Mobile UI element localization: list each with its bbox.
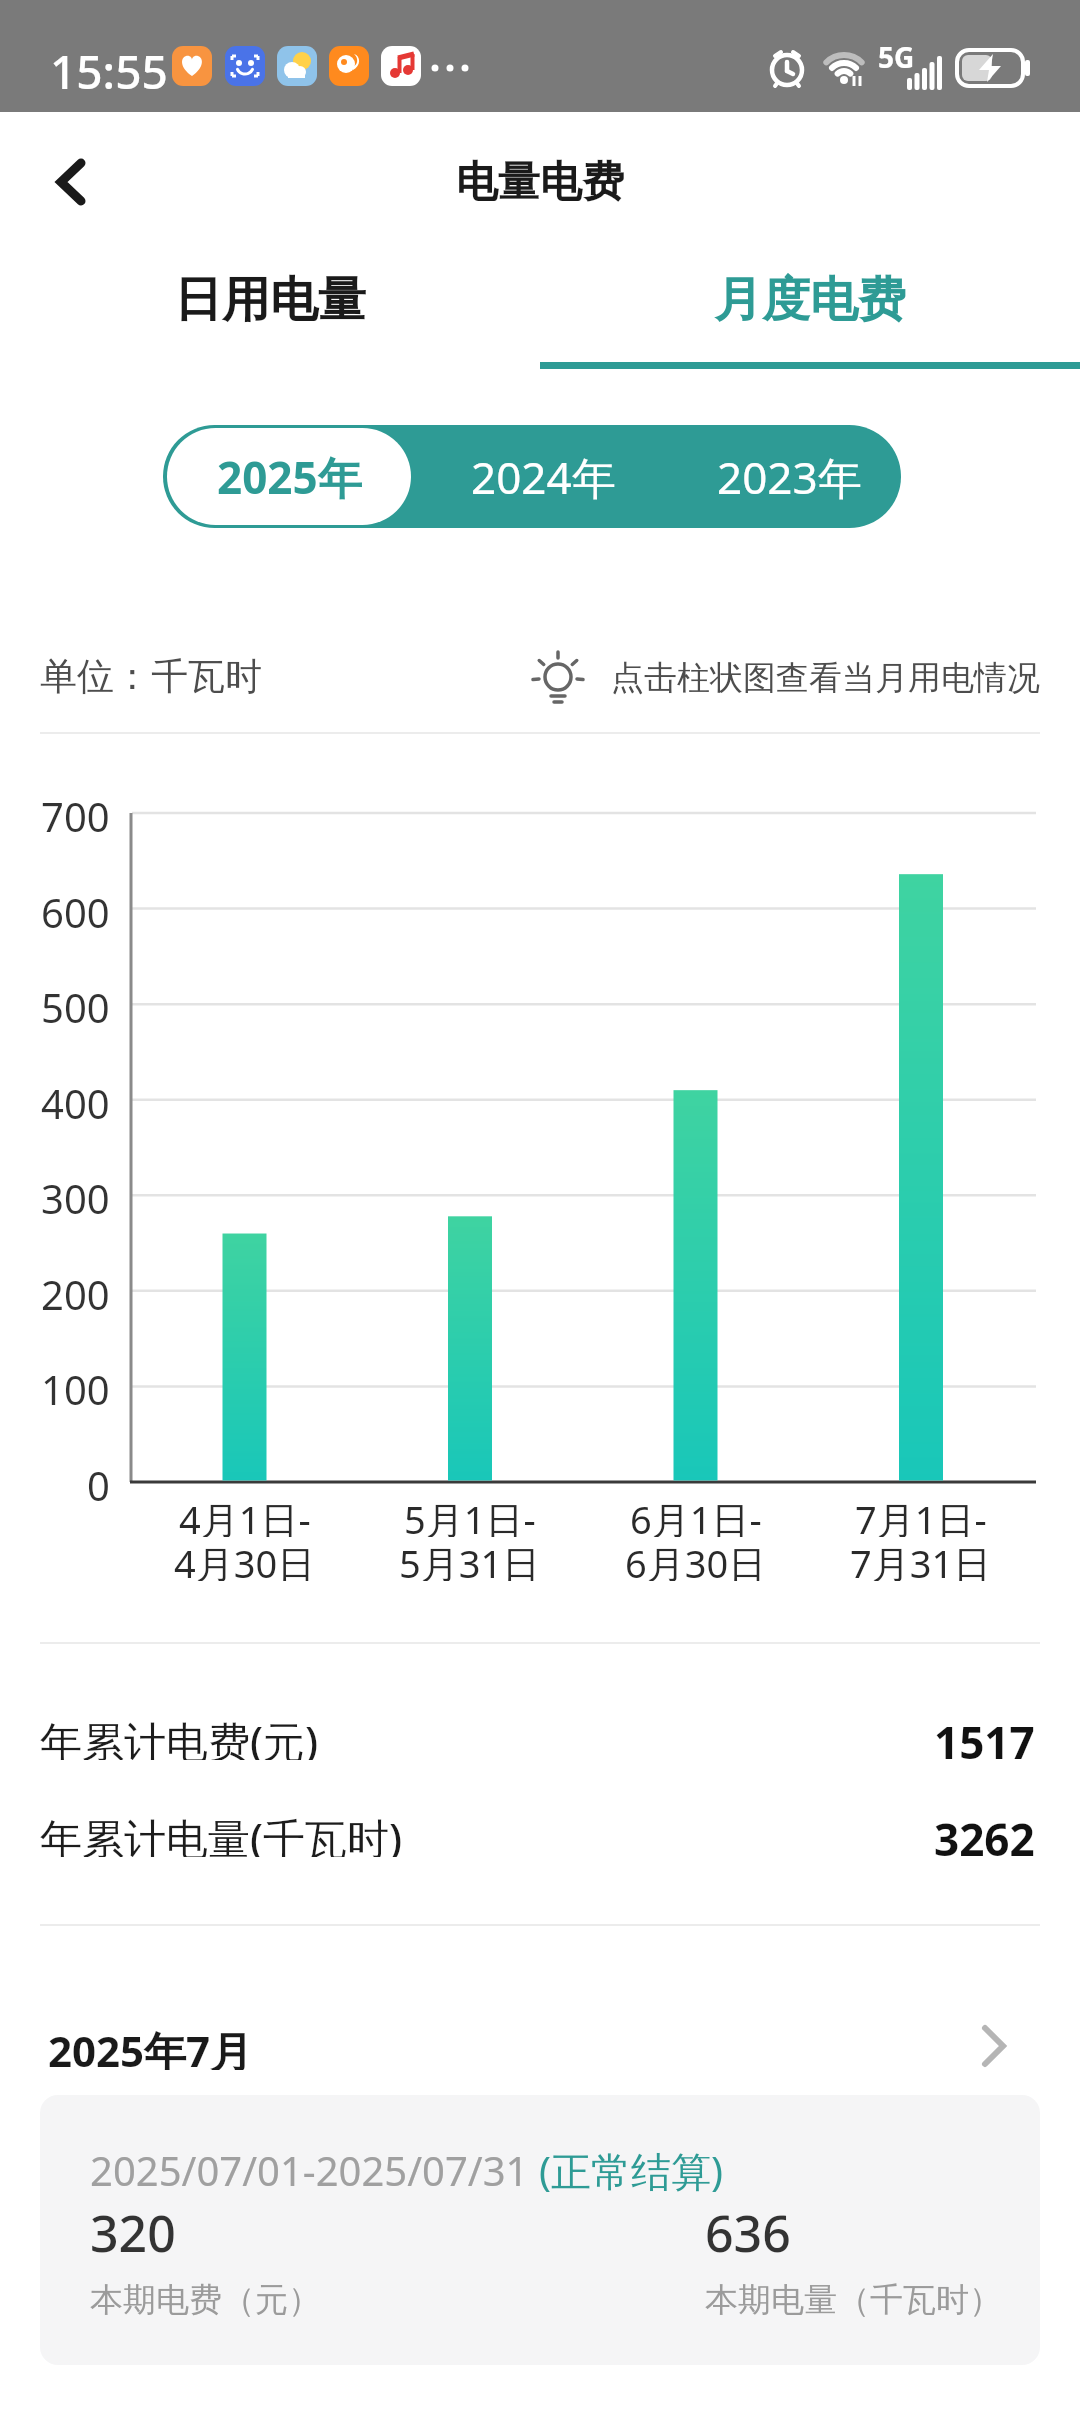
button[interactable]: 日用电量 bbox=[0, 268, 540, 332]
staticText: 4月30日 bbox=[174, 1537, 316, 1581]
staticText: 2025年7月 bbox=[48, 2022, 253, 2070]
staticText: 100 bbox=[41, 1362, 110, 1410]
staticText: 年累计电量(千瓦时) bbox=[40, 1809, 403, 1857]
staticText: 日用电量 bbox=[174, 270, 366, 330]
staticText: 2023年 bbox=[717, 447, 862, 507]
staticText: 3262 bbox=[934, 1809, 1035, 1857]
staticText: 7月1日- bbox=[855, 1493, 987, 1537]
staticText: 5月1日- bbox=[404, 1493, 536, 1537]
staticText: (正常结算) bbox=[539, 2143, 723, 2198]
button[interactable]: 2023年 bbox=[666, 425, 912, 528]
staticText: 320 bbox=[90, 2199, 176, 2261]
button[interactable]: 2024年 bbox=[420, 425, 666, 528]
staticText: 年累计电费(元) bbox=[40, 1712, 319, 1760]
staticText: 600 bbox=[41, 885, 110, 933]
staticText: 1517 bbox=[934, 1712, 1035, 1760]
staticText: 5月31日 bbox=[399, 1537, 541, 1581]
staticText: 电量电费 bbox=[456, 156, 624, 208]
staticText: 本期电费（元） bbox=[90, 2279, 321, 2321]
staticText: 本期电量（千瓦时） bbox=[705, 2279, 1002, 2321]
staticText: 单位：千瓦时 bbox=[40, 653, 262, 697]
button[interactable]: 月度电费 bbox=[540, 268, 1080, 332]
button[interactable] bbox=[50, 158, 94, 206]
staticText: 400 bbox=[41, 1076, 110, 1124]
staticText: 700 bbox=[41, 789, 110, 837]
button[interactable]: 2025年 bbox=[167, 425, 411, 528]
button[interactable]: 2025/07/01-2025/07/31 bbox=[40, 2095, 1040, 2365]
staticText: 2024年 bbox=[471, 447, 616, 507]
staticText: 2025/07/01-2025/07/31 bbox=[90, 2143, 539, 2197]
staticText: 7月31日 bbox=[850, 1537, 992, 1581]
staticText: 4月1日- bbox=[179, 1493, 311, 1537]
button[interactable] bbox=[975, 2026, 1015, 2066]
staticText: 500 bbox=[41, 980, 110, 1028]
staticText: 0 bbox=[87, 1458, 110, 1506]
staticText: 5G bbox=[878, 38, 915, 76]
staticText: 2025年 bbox=[217, 447, 362, 507]
staticText: 200 bbox=[41, 1267, 110, 1315]
staticText: 636 bbox=[705, 2199, 791, 2261]
staticText: 6月1日- bbox=[630, 1493, 762, 1537]
staticText: 15:55 bbox=[50, 40, 168, 96]
staticText: 6月30日 bbox=[625, 1537, 767, 1581]
staticText: 300 bbox=[41, 1171, 110, 1219]
staticText: 点击柱状图查看当月用电情况 bbox=[611, 657, 1040, 697]
staticText: 月度电费 bbox=[714, 270, 906, 330]
